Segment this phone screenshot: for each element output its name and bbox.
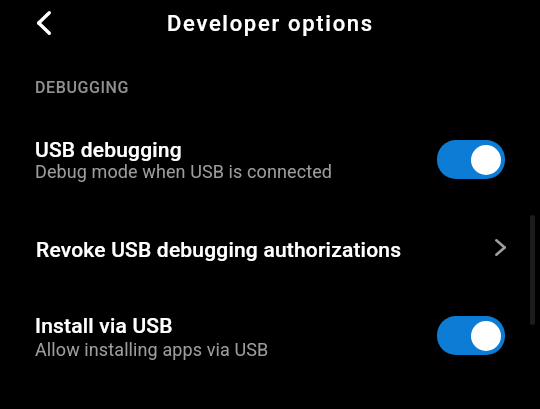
- staticText: Allow installing apps via USB: [35, 339, 269, 360]
- staticText: Developer options: [167, 11, 374, 37]
- button[interactable]: Revoke USB debugging authorizations: [0, 204, 540, 289]
- button[interactable]: Install via USB: [0, 289, 540, 374]
- button[interactable]: USB debugging: [0, 110, 540, 195]
- staticText: Revoke USB debugging authorizations: [36, 238, 402, 263]
- staticText: DEBUGGING: [35, 78, 130, 97]
- button[interactable]: Install via USB: [437, 316, 505, 355]
- button[interactable]: Navigate up: [21, 0, 67, 46]
- staticText: USB debugging: [35, 138, 182, 163]
- staticText: Debug mode when USB is connected: [35, 161, 333, 182]
- button[interactable]: USB debugging: [437, 140, 505, 179]
- staticText: Install via USB: [35, 314, 173, 339]
